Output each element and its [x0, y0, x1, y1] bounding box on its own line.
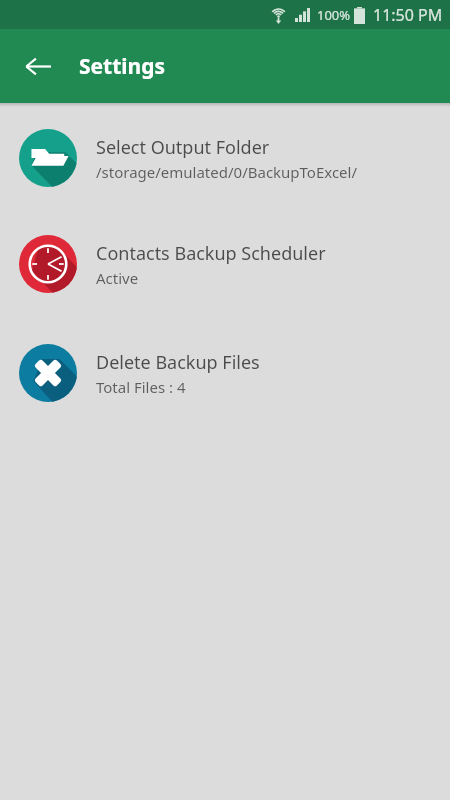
- staticText: Select Output Folder: [96, 135, 270, 160]
- staticText: Settings: [79, 52, 166, 81]
- staticText: 11:50 PM: [373, 4, 443, 26]
- staticText: Delete Backup Files: [96, 350, 260, 375]
- button[interactable]: Select output folder: [0, 129, 450, 187]
- staticText: Active: [96, 268, 139, 288]
- button[interactable]: Back: [14, 42, 62, 90]
- staticText: Contacts Backup Scheduler: [96, 241, 326, 266]
- staticText: Total Files : 4: [96, 377, 186, 397]
- other: Contacts backup scheduler: [19, 235, 77, 293]
- other: Delete backup files: [19, 344, 77, 402]
- staticText: 100%: [317, 6, 351, 24]
- other: Select output folder: [19, 129, 77, 187]
- button[interactable]: Delete backup files: [0, 344, 450, 402]
- staticText: /storage/emulated/0/BackupToExcel/: [96, 162, 358, 182]
- button[interactable]: Contacts backup scheduler: [0, 235, 450, 293]
